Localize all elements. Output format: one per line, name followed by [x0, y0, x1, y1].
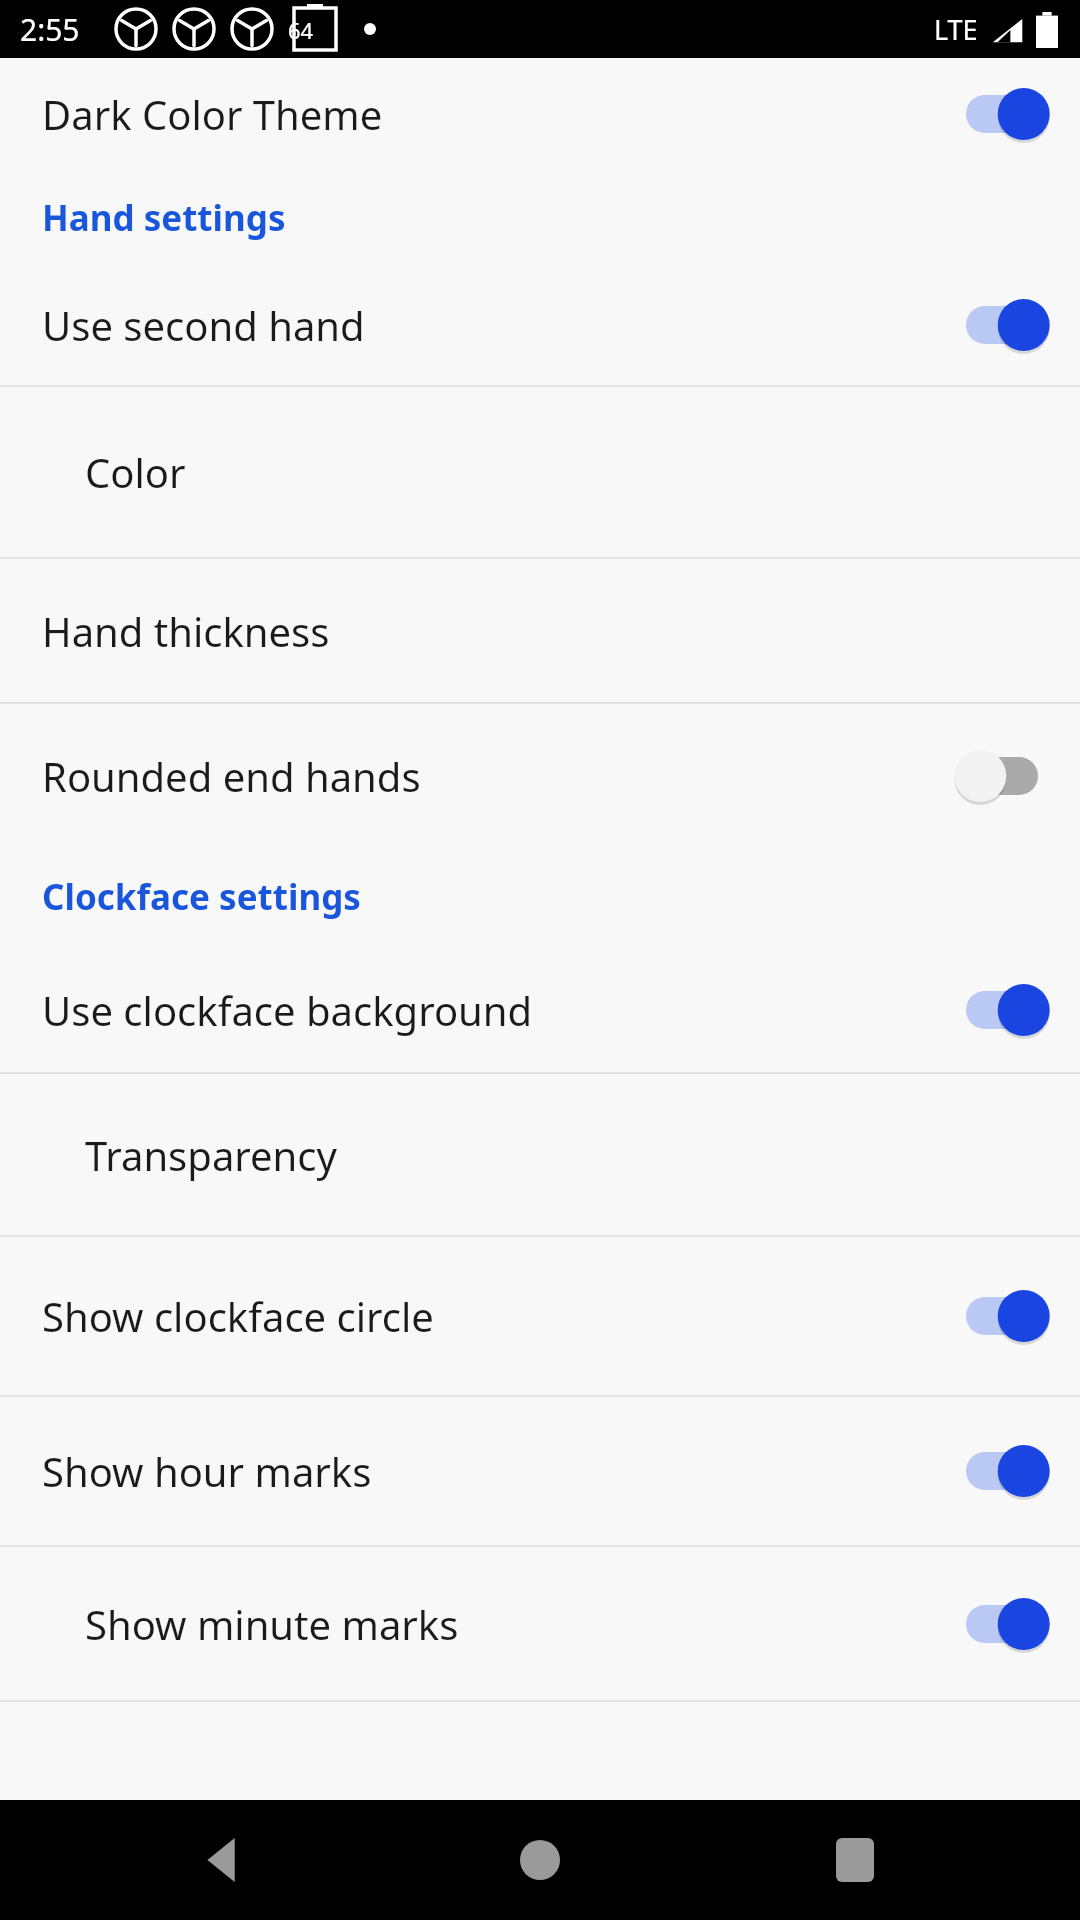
button[interactable]: Rounded end hands — [0, 704, 1080, 847]
staticText: Show hour marks — [42, 1444, 958, 1498]
button[interactable]: Use second hand — [0, 265, 1080, 385]
staticText: LTE — [934, 11, 978, 48]
staticText: Use second hand — [42, 298, 958, 352]
button[interactable]: Recent apps — [795, 1800, 915, 1920]
staticText: Show minute marks — [85, 1597, 958, 1651]
button[interactable]: Dark Color Theme — [0, 58, 1080, 170]
staticText: Dark Color Theme — [42, 87, 958, 141]
staticText: Clockface settings — [42, 873, 361, 921]
button[interactable]: Show hour marks — [0, 1397, 1080, 1545]
staticText: Transparency — [85, 1128, 1050, 1182]
button[interactable]: Show minute marks — [0, 1547, 1080, 1700]
staticText: 2:55 — [20, 9, 80, 50]
staticText: Hand thickness — [42, 604, 1050, 658]
button[interactable]: Use clockface background — [0, 947, 1080, 1072]
staticText: 64 — [288, 15, 314, 45]
staticText: Color — [85, 445, 1050, 499]
button[interactable]: Back — [165, 1800, 285, 1920]
staticText: Hand settings — [42, 194, 286, 242]
button[interactable]: Transparency — [0, 1074, 1080, 1235]
button[interactable]: Hand thickness — [0, 559, 1080, 702]
staticText: Show clockface circle — [42, 1289, 958, 1343]
button[interactable]: Home — [480, 1800, 600, 1920]
button[interactable]: Color — [0, 387, 1080, 557]
staticText: Rounded end hands — [42, 749, 958, 803]
button[interactable]: Show clockface circle — [0, 1237, 1080, 1395]
staticText: Use clockface background — [42, 983, 958, 1037]
